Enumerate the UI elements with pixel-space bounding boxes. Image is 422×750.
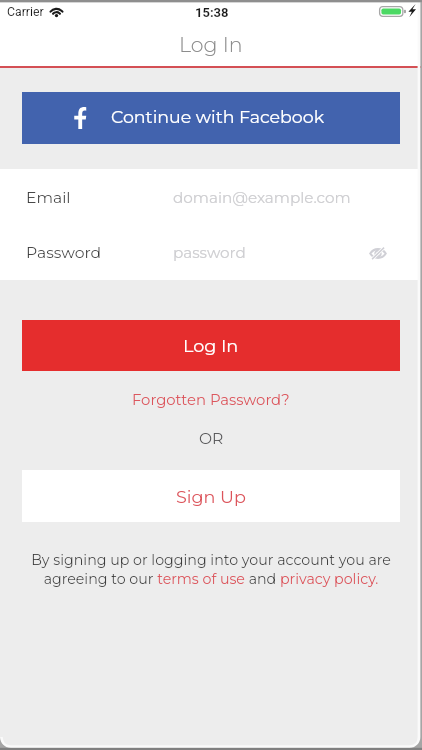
staticText: Log In [179,32,243,57]
button[interactable]: Log In [22,320,400,371]
button[interactable]: Continue with Facebook [22,92,400,144]
staticText: Email [26,188,71,207]
button[interactable]: Forgotten Password? [126,387,296,413]
button[interactable]: Sign Up [22,470,400,522]
button[interactable]: Email [0,169,422,225]
staticText: password [173,243,246,262]
staticText: Carrier [7,5,44,19]
button[interactable]: Show password [366,243,390,263]
staticText: Forgotten Password? [132,391,290,409]
staticText: domain@example.com [173,188,351,207]
button[interactable]: Password [0,225,422,280]
staticText: Password [26,243,102,262]
staticText: Log In [183,335,239,356]
staticText: By signing up or logging into your accou… [16,551,406,587]
staticText: Continue with Facebook [111,106,325,127]
staticText: Sign Up [176,486,246,507]
staticText: 15:38 [195,5,229,20]
staticText: OR [199,429,224,448]
